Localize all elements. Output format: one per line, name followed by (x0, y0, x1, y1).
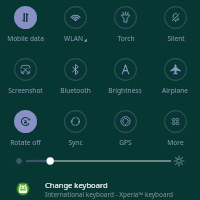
button[interactable]: Torch (100, 0, 150, 52)
button[interactable]: Silent (150, 0, 200, 52)
button[interactable]: Mobile data (0, 0, 50, 52)
button[interactable]: Airplane (150, 52, 200, 104)
staticText: International keyboard - Xperia™ keyboar… (45, 190, 173, 199)
staticText: WLAN (64, 34, 83, 43)
button[interactable]: Rotate off (0, 104, 50, 156)
staticText: Rotate off (10, 138, 41, 147)
staticText: Torch (117, 34, 135, 43)
button[interactable]: WLAN (50, 0, 100, 52)
button[interactable]: Sync (50, 104, 100, 156)
staticText: GPS (119, 138, 132, 147)
button[interactable]: GPS (100, 104, 150, 156)
button[interactable]: Screenshot (0, 52, 50, 104)
staticText: Sync (68, 138, 83, 147)
staticText: Screenshot (8, 86, 43, 95)
staticText: Airplane (162, 86, 188, 95)
staticText: Silent (167, 34, 185, 43)
button[interactable]: Change keyboard (0, 176, 200, 200)
button[interactable]: More (150, 104, 200, 156)
staticText: Bluetooth (60, 86, 91, 95)
button[interactable]: Brightness (100, 52, 150, 104)
staticText: Mobile data (7, 34, 44, 43)
staticText: Change keyboard (45, 180, 108, 190)
button[interactable]: Brightness (0, 151, 200, 171)
button[interactable]: Bluetooth (50, 52, 100, 104)
staticText: Brightness (108, 86, 142, 95)
staticText: More (167, 138, 184, 147)
